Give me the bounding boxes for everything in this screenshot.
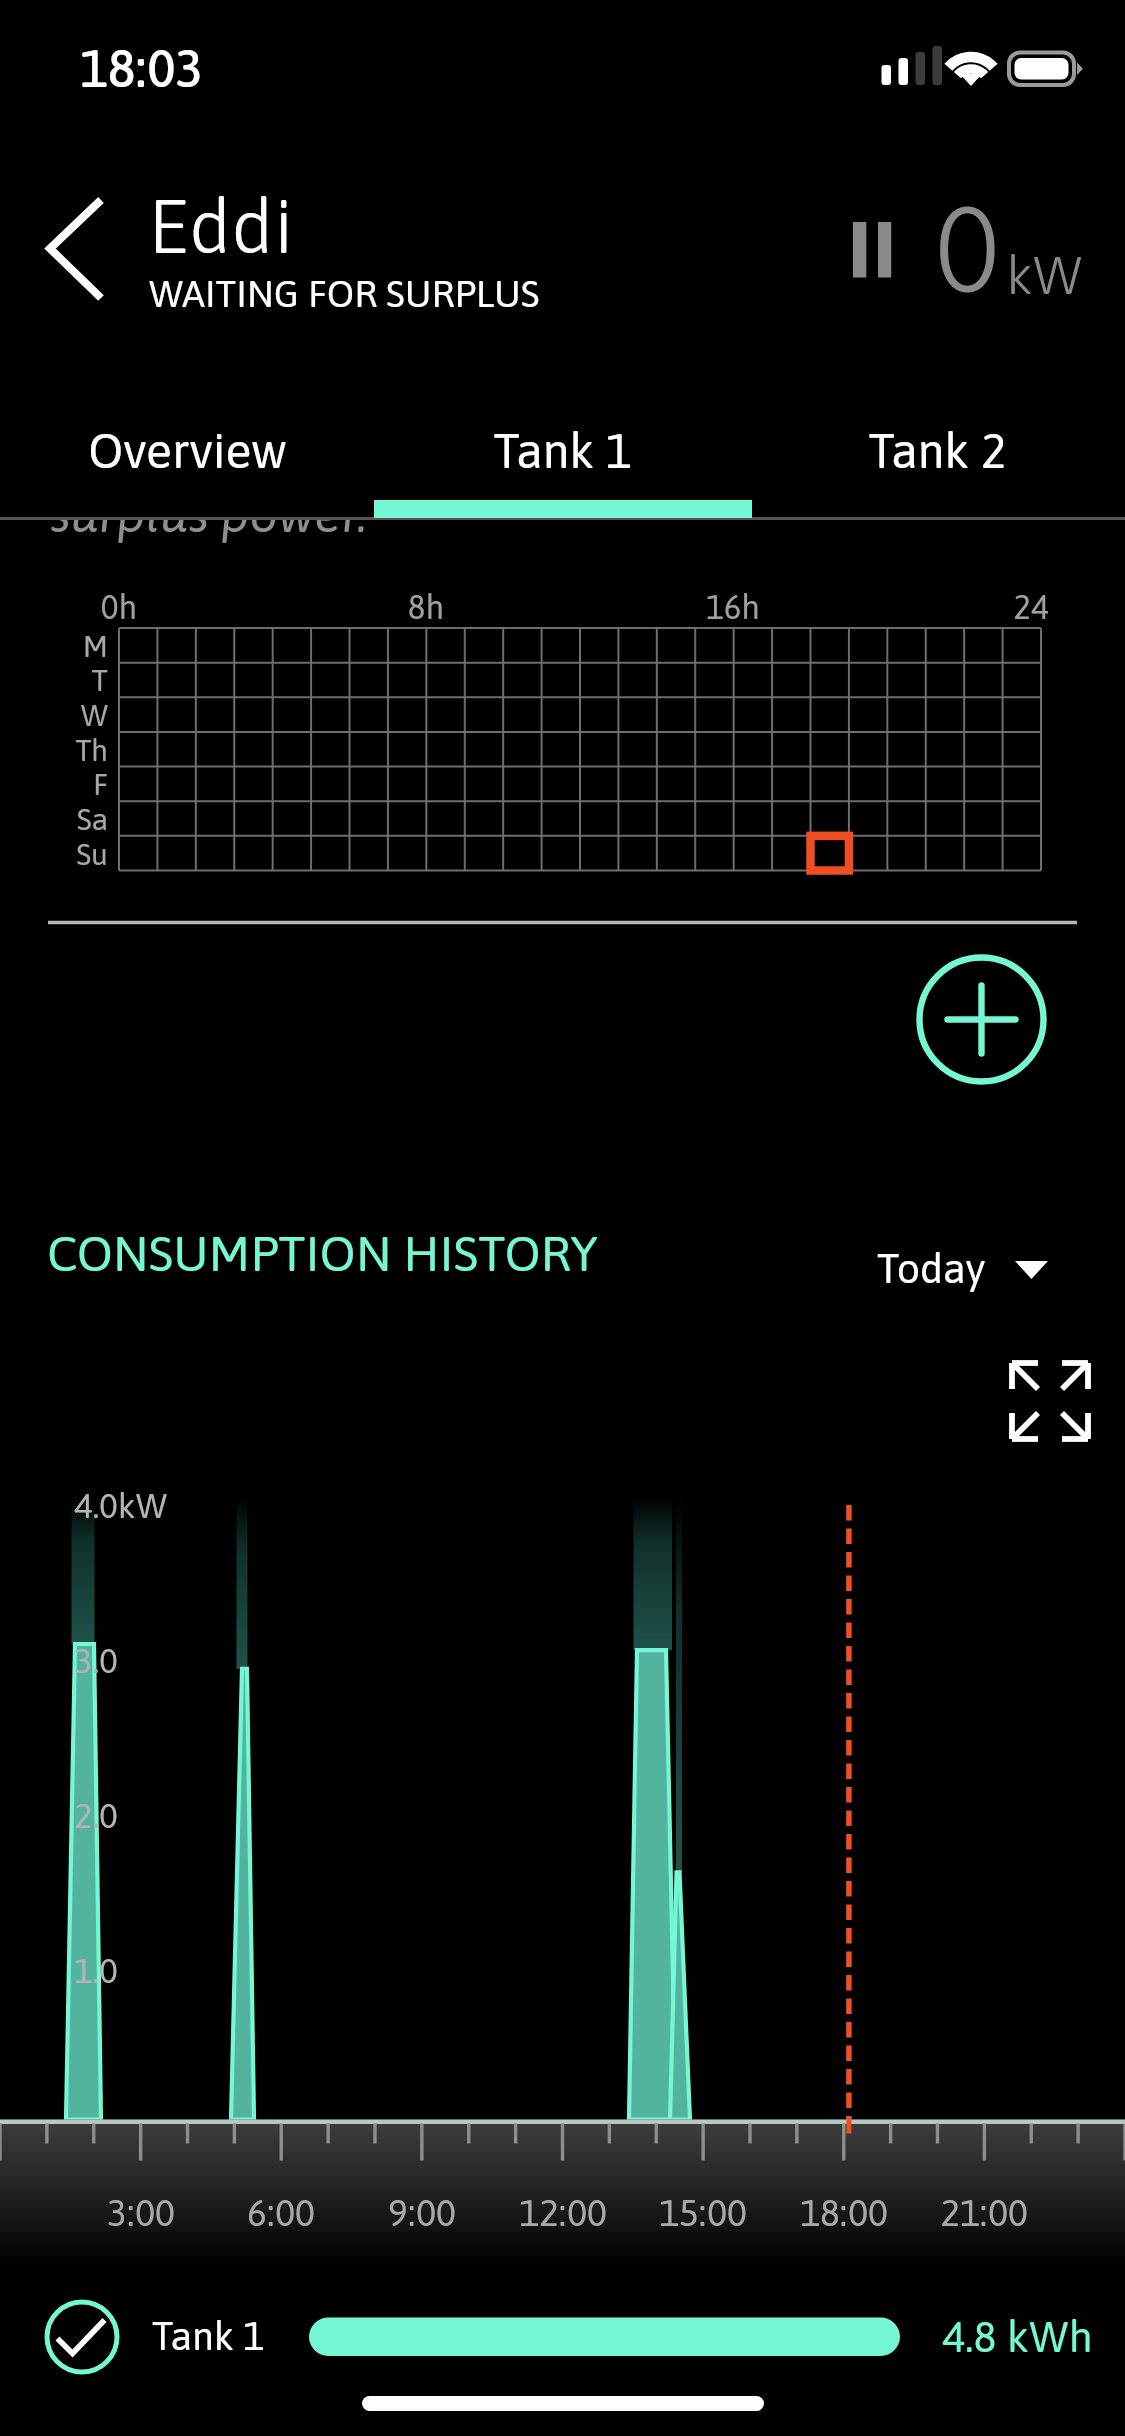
staticText: T bbox=[0, 663, 108, 697]
staticText: 9:00 bbox=[122, 2191, 722, 2233]
staticText: kW bbox=[1006, 244, 1082, 305]
staticText: 8h bbox=[126, 588, 726, 626]
staticText: CONSUMPTION HISTORY bbox=[47, 1225, 598, 1282]
button[interactable]: Paused, 0 kilowatts bbox=[840, 196, 1090, 311]
staticText: 6:00 bbox=[0, 2191, 581, 2233]
button[interactable]: Tank 1 bbox=[30, 2292, 1095, 2384]
staticText: W bbox=[0, 698, 108, 732]
staticText: 18:00 bbox=[544, 2191, 1125, 2233]
staticText: 24 bbox=[731, 588, 1125, 626]
button[interactable]: Expand chart to full screen bbox=[1000, 1351, 1100, 1451]
staticText: 4.0kW bbox=[74, 1486, 168, 1526]
staticText: 16h bbox=[433, 588, 1033, 626]
button[interactable]: Back bbox=[24, 180, 122, 318]
staticText: 4.8 kWh bbox=[942, 2312, 1093, 2361]
staticText: surplus power. bbox=[50, 485, 367, 542]
staticText: Su bbox=[0, 837, 108, 871]
staticText: 15:00 bbox=[403, 2191, 1003, 2233]
staticText: 1.0 bbox=[74, 1951, 118, 1991]
staticText: Overview bbox=[0, 423, 375, 478]
button[interactable]: Tank 1 bbox=[375, 400, 750, 518]
staticText: 2.0 bbox=[74, 1796, 118, 1836]
button[interactable]: Overview bbox=[0, 400, 375, 518]
staticText: Tank 1 bbox=[375, 423, 750, 478]
button[interactable]: Today bbox=[866, 1236, 1061, 1306]
staticText: 3.0 bbox=[74, 1641, 118, 1681]
staticText: 0h bbox=[0, 588, 419, 626]
staticText: Tank 1 bbox=[152, 2314, 265, 2359]
staticText: M bbox=[0, 629, 108, 663]
staticText: 0 bbox=[935, 179, 1000, 294]
staticText: Th bbox=[0, 733, 108, 767]
staticText: F bbox=[0, 767, 108, 801]
staticText: 3:00 bbox=[0, 2191, 441, 2233]
staticText: Today bbox=[877, 1245, 986, 1292]
staticText: Eddi bbox=[148, 183, 294, 269]
staticText: 18:03 bbox=[80, 38, 204, 98]
staticText: 21:00 bbox=[684, 2191, 1125, 2233]
staticText: 12:00 bbox=[263, 2191, 863, 2233]
button[interactable]: Add schedule bbox=[917, 955, 1046, 1084]
staticText: WAITING FOR SURPLUS bbox=[149, 272, 540, 315]
staticText: Tank 2 bbox=[750, 423, 1125, 478]
button[interactable]: Tank 2 bbox=[750, 400, 1125, 518]
staticText: Sa bbox=[0, 802, 108, 836]
